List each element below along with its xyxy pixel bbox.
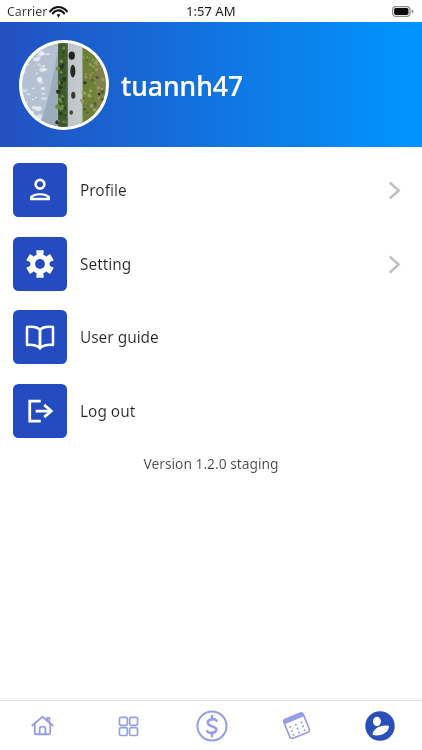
button[interactable]: Dashboard xyxy=(85,701,170,750)
button[interactable]: Profile xyxy=(338,701,422,750)
staticText: Version 1.2.0 staging xyxy=(0,454,422,473)
staticText: Setting xyxy=(80,254,132,275)
button[interactable]: Setting xyxy=(0,237,422,291)
button[interactable]: Log out xyxy=(0,384,422,438)
staticText: tuannh47 xyxy=(121,68,244,104)
button[interactable]: Calendar xyxy=(254,701,338,750)
staticText: 1:57 AM xyxy=(186,2,236,20)
staticText: Profile xyxy=(80,180,127,201)
staticText: Log out xyxy=(80,401,136,422)
button[interactable]: Payments xyxy=(170,701,254,750)
staticText: Carrier xyxy=(7,3,48,20)
staticText: User guide xyxy=(80,327,159,348)
button[interactable]: User guide xyxy=(0,310,422,364)
button[interactable]: Home xyxy=(0,701,85,750)
button[interactable]: Profile xyxy=(0,163,422,217)
